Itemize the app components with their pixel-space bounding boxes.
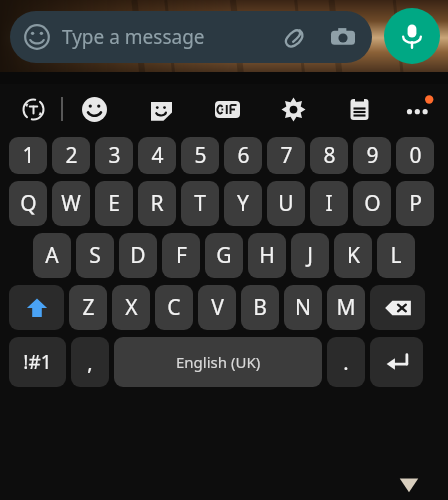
button[interactable]: Clipboard bbox=[340, 84, 378, 134]
staticText: W bbox=[61, 189, 81, 218]
button[interactable]: Emoji bbox=[10, 11, 372, 63]
button[interactable]: Q bbox=[9, 181, 47, 226]
staticText: 0 bbox=[409, 141, 422, 170]
staticText: 2 bbox=[65, 141, 78, 170]
staticText: P bbox=[409, 189, 422, 218]
button[interactable]: !#1 bbox=[9, 337, 66, 387]
button[interactable]: S bbox=[76, 233, 114, 278]
button[interactable]: U bbox=[267, 181, 305, 226]
button[interactable]: L bbox=[377, 233, 415, 278]
staticText: S bbox=[89, 241, 101, 270]
staticText: 9 bbox=[366, 141, 379, 170]
staticText: B bbox=[253, 293, 267, 322]
button[interactable]: P bbox=[396, 181, 434, 226]
button[interactable]: Translate bbox=[14, 84, 52, 134]
button[interactable]: T bbox=[181, 181, 219, 226]
button[interactable]: 4 bbox=[138, 137, 176, 174]
button[interactable]: Attach bbox=[278, 20, 312, 54]
button[interactable]: K bbox=[334, 233, 372, 278]
button[interactable]: X bbox=[112, 285, 150, 330]
button[interactable]: 8 bbox=[310, 137, 348, 174]
staticText: A bbox=[45, 241, 59, 270]
staticText: O bbox=[364, 189, 381, 218]
staticText: G bbox=[216, 241, 232, 270]
button[interactable]: E bbox=[95, 181, 133, 226]
staticText: R bbox=[150, 189, 164, 218]
button[interactable]: F bbox=[162, 233, 200, 278]
button[interactable]: G bbox=[205, 233, 243, 278]
button[interactable]: Voice message bbox=[384, 8, 440, 64]
button[interactable]: 5 bbox=[181, 137, 219, 174]
button[interactable]: Stickers bbox=[142, 84, 180, 134]
button[interactable]: D bbox=[119, 233, 157, 278]
staticText: U bbox=[278, 189, 294, 218]
staticText: 1 bbox=[22, 141, 35, 170]
staticText: I bbox=[325, 189, 333, 218]
button[interactable]: A bbox=[33, 233, 71, 278]
staticText: , bbox=[87, 349, 93, 376]
button[interactable]: M bbox=[327, 285, 365, 330]
button[interactable]: I bbox=[310, 181, 348, 226]
button[interactable]: . bbox=[327, 337, 365, 387]
button[interactable]: Emoji bbox=[75, 84, 113, 134]
staticText: 8 bbox=[323, 141, 336, 170]
staticText: C bbox=[167, 293, 181, 322]
staticText: M bbox=[336, 293, 356, 322]
button[interactable]: Z bbox=[69, 285, 107, 330]
staticText: 5 bbox=[194, 141, 207, 170]
staticText: H bbox=[259, 241, 275, 270]
button[interactable]: Shift bbox=[9, 285, 64, 330]
button[interactable]: 6 bbox=[224, 137, 262, 174]
staticText: X bbox=[125, 293, 138, 322]
staticText: 6 bbox=[237, 141, 250, 170]
button[interactable]: Enter bbox=[370, 337, 423, 387]
button[interactable]: O bbox=[353, 181, 391, 226]
button[interactable]: 3 bbox=[95, 137, 133, 174]
button[interactable]: B bbox=[241, 285, 279, 330]
button[interactable]: 2 bbox=[52, 137, 90, 174]
button[interactable]: H bbox=[248, 233, 286, 278]
button[interactable]: Settings bbox=[274, 84, 312, 134]
button[interactable]: Backspace bbox=[370, 285, 425, 330]
staticText: D bbox=[130, 241, 146, 270]
staticText: N bbox=[295, 293, 311, 322]
button[interactable]: 9 bbox=[353, 137, 391, 174]
staticText: T bbox=[194, 189, 206, 218]
staticText: 7 bbox=[280, 141, 293, 170]
staticText: !#1 bbox=[23, 349, 52, 375]
button[interactable]: J bbox=[291, 233, 329, 278]
staticText: . bbox=[343, 349, 349, 376]
button[interactable]: Emoji bbox=[22, 22, 52, 52]
button[interactable]: , bbox=[71, 337, 109, 387]
staticText: J bbox=[307, 241, 313, 270]
staticText: 4 bbox=[151, 141, 164, 170]
staticText: Z bbox=[82, 293, 95, 322]
staticText: L bbox=[390, 241, 402, 270]
staticText: Q bbox=[20, 189, 37, 218]
button[interactable]: More options bbox=[398, 84, 440, 134]
button[interactable]: R bbox=[138, 181, 176, 226]
staticText: Type a message bbox=[62, 24, 278, 50]
staticText: K bbox=[347, 241, 360, 270]
button[interactable]: 7 bbox=[267, 137, 305, 174]
staticText: E bbox=[108, 189, 120, 218]
staticText: F bbox=[176, 241, 187, 270]
button[interactable]: N bbox=[284, 285, 322, 330]
button[interactable]: GIF bbox=[208, 84, 246, 134]
button[interactable]: 1 bbox=[9, 137, 47, 174]
button[interactable]: Y bbox=[224, 181, 262, 226]
staticText: V bbox=[211, 293, 224, 322]
button[interactable]: Camera bbox=[326, 20, 360, 54]
staticText: Y bbox=[237, 189, 249, 218]
button[interactable]: 0 bbox=[396, 137, 434, 174]
button[interactable]: C bbox=[155, 285, 193, 330]
button[interactable]: W bbox=[52, 181, 90, 226]
staticText: English (UK) bbox=[176, 352, 261, 372]
button[interactable]: English (UK) bbox=[114, 337, 322, 387]
button[interactable]: V bbox=[198, 285, 236, 330]
staticText: 3 bbox=[108, 141, 121, 170]
